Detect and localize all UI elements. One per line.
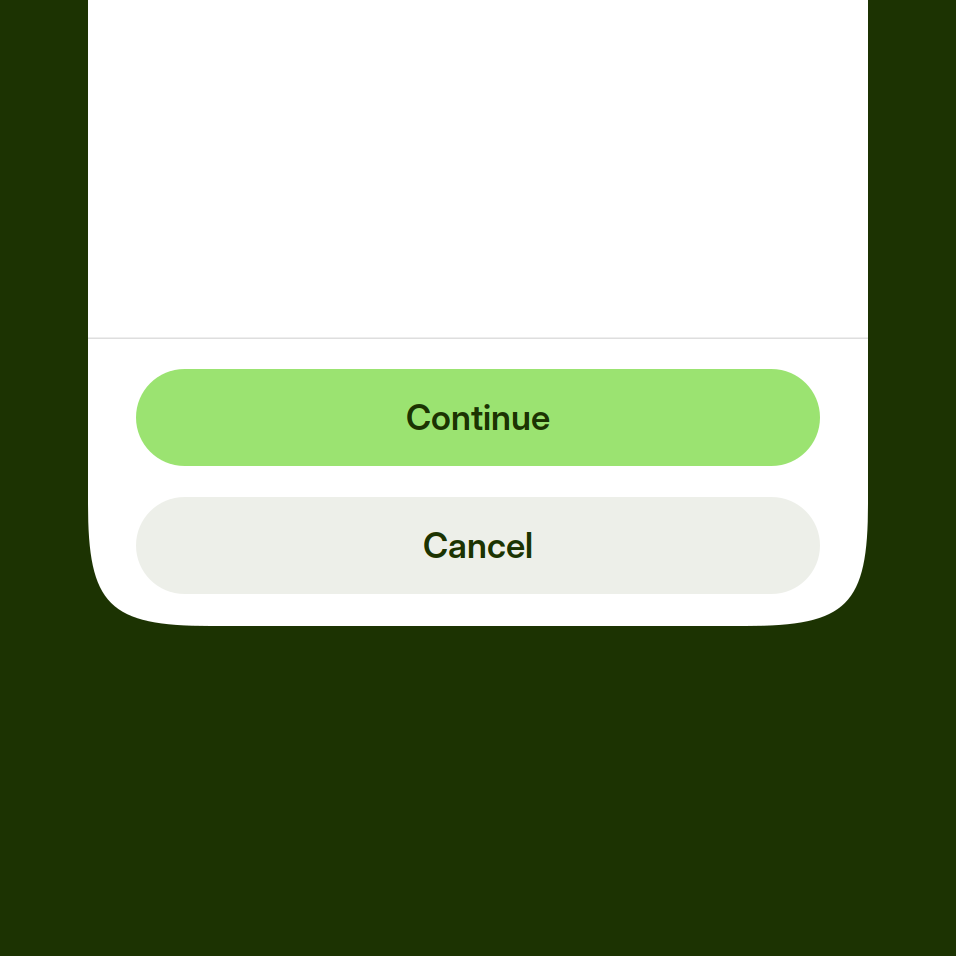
button[interactable]: Cancel (136, 497, 820, 594)
button[interactable]: Continue (136, 369, 820, 466)
staticText: Continue (406, 396, 550, 438)
staticText: Cancel (423, 524, 533, 566)
